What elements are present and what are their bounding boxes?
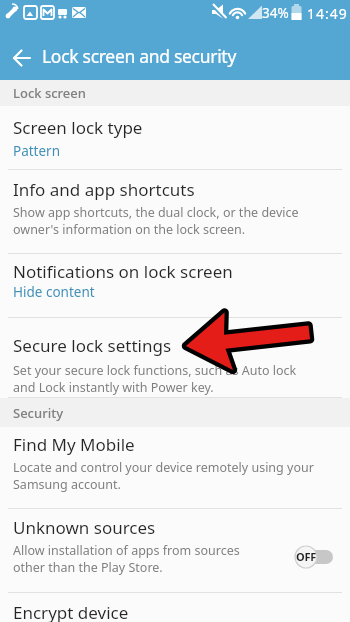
- staticText: 14:49: [307, 4, 348, 23]
- staticText: Encrypt device: [13, 601, 129, 622]
- staticText: Screen lock type: [13, 116, 143, 139]
- staticText: Set your secure lock functions, such as …: [13, 362, 297, 395]
- button[interactable]: [6, 43, 40, 73]
- staticText: Pattern: [13, 142, 61, 160]
- button[interactable]: Screen lock type: [0, 106, 350, 169]
- staticText: Hide content: [13, 283, 95, 301]
- staticText: Notifications on lock screen: [13, 260, 233, 283]
- staticText: Security: [13, 404, 63, 422]
- button[interactable]: Notifications on lock screen: [0, 254, 350, 317]
- staticText: OFF: [296, 549, 317, 564]
- staticText: Find My Mobile: [13, 433, 135, 456]
- button[interactable]: OFF: [290, 542, 342, 572]
- staticText: Show app shortcuts, the dual clock, or t…: [13, 204, 299, 237]
- button[interactable]: Info and app shortcuts: [0, 170, 350, 253]
- button[interactable]: Encrypt device: [0, 593, 350, 622]
- staticText: Lock screen: [13, 84, 86, 102]
- staticText: Locate and control your device remotely …: [13, 459, 314, 492]
- staticText: 34%: [262, 4, 289, 22]
- staticText: Unknown sources: [13, 516, 156, 539]
- staticText: Lock screen and security: [42, 44, 237, 68]
- staticText: Secure lock settings: [13, 334, 172, 357]
- staticText: Info and app shortcuts: [13, 178, 195, 201]
- staticText: Allow installation of apps from sources …: [13, 542, 240, 575]
- button[interactable]: Unknown sources: [0, 509, 350, 592]
- button[interactable]: Secure lock settings: [0, 318, 350, 397]
- button[interactable]: Find My Mobile: [0, 427, 350, 508]
